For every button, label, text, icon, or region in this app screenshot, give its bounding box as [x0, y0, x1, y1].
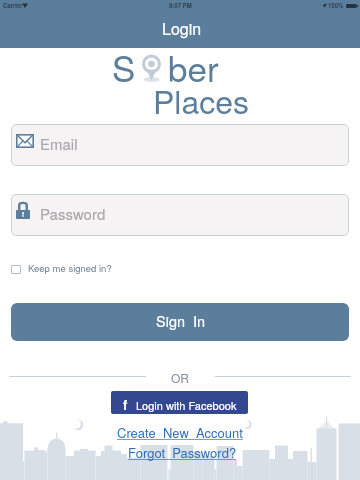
- button[interactable]: Forgot Password?: [128, 443, 237, 462]
- staticText: f: [123, 395, 128, 414]
- staticText: OR: [171, 369, 190, 386]
- button[interactable]: Email: [11, 124, 349, 166]
- staticText: Login with Facebook: [136, 397, 237, 413]
- staticText: Sign In: [156, 310, 206, 331]
- staticText: Places: [153, 77, 250, 123]
- staticText: 100%: [328, 1, 344, 10]
- staticText: Login: [162, 17, 202, 40]
- staticText: Email: [40, 133, 78, 154]
- button[interactable]: Password: [11, 194, 349, 236]
- staticText: ber: [168, 42, 219, 92]
- button[interactable]: f: [111, 391, 248, 414]
- staticText: 8:07 PM: [169, 1, 192, 10]
- staticText: Keep me signed in?: [28, 261, 112, 275]
- staticText: Carrier: [3, 1, 23, 10]
- button[interactable]: Create New Account: [117, 423, 243, 442]
- button[interactable]: Keep me signed in?: [8, 261, 112, 279]
- staticText: S: [112, 42, 136, 92]
- button[interactable]: Sign In: [11, 303, 349, 341]
- staticText: Password: [40, 203, 106, 224]
